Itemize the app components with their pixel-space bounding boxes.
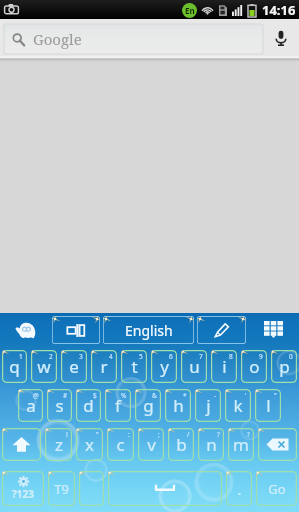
staticText: f — [115, 394, 121, 417]
staticText: q — [9, 355, 20, 378]
staticText: " — [274, 391, 277, 400]
button[interactable]: p — [271, 350, 297, 383]
button[interactable]: w — [31, 350, 57, 383]
staticText: o — [249, 355, 260, 378]
staticText: / — [187, 430, 190, 439]
staticText: $ — [93, 391, 97, 400]
staticText: ? — [217, 430, 220, 439]
button[interactable]: i — [211, 350, 237, 383]
button[interactable]: t — [121, 350, 147, 383]
staticText: T9 — [54, 480, 69, 498]
staticText: 0 — [289, 352, 293, 361]
button[interactable]: Symbols — [2, 471, 44, 506]
button[interactable]: Go — [256, 471, 297, 506]
button[interactable]: j — [195, 389, 221, 422]
staticText: z — [55, 433, 63, 456]
staticText: . — [237, 479, 242, 499]
button[interactable]: Google — [4, 24, 263, 54]
staticText: r — [100, 355, 108, 378]
button[interactable]: d — [76, 389, 101, 422]
staticText: i — [222, 355, 227, 378]
staticText: x — [85, 433, 94, 456]
button[interactable]: Voice search — [263, 19, 299, 56]
staticText: ! — [66, 430, 68, 439]
staticText: ?123 — [12, 487, 34, 501]
staticText: ? — [247, 430, 250, 439]
staticText: 2 — [49, 352, 53, 361]
staticText: g — [143, 394, 154, 417]
staticText: 14:16 — [262, 1, 296, 19]
button[interactable]: Screenshot — [0, 0, 22, 19]
button[interactable]: f — [105, 389, 131, 422]
staticText: Google — [33, 29, 82, 49]
staticText: u — [189, 355, 200, 378]
staticText: l — [266, 394, 271, 417]
button[interactable]: . — [226, 471, 252, 506]
staticText: 7 — [199, 352, 203, 361]
staticText: Go — [268, 480, 286, 498]
staticText: English — [125, 321, 173, 340]
staticText: 4 — [109, 352, 113, 361]
staticText: w — [37, 355, 51, 378]
button[interactable]: n — [198, 428, 224, 461]
button[interactable]: T9 — [48, 471, 75, 506]
button[interactable]: Keyboard layout — [248, 313, 299, 346]
button[interactable]: e — [61, 350, 87, 383]
staticText: 9 — [259, 352, 263, 361]
button[interactable]: GO Keyboard menu — [0, 313, 52, 346]
button[interactable]: a — [18, 389, 43, 422]
button[interactable]: English — [103, 316, 194, 344]
button[interactable]: m — [228, 428, 254, 461]
staticText: n — [206, 433, 217, 456]
button[interactable]: y — [151, 350, 177, 383]
button[interactable]: k — [225, 389, 251, 422]
staticText: c — [116, 433, 125, 456]
button[interactable]: z — [45, 428, 72, 461]
staticText: p — [279, 355, 290, 378]
staticText: @ — [33, 391, 39, 400]
button[interactable]: g — [135, 389, 161, 422]
staticText: " — [96, 430, 99, 439]
staticText: 5 — [139, 352, 143, 361]
button[interactable]: Backspace — [258, 428, 297, 461]
staticText: 8 — [229, 352, 233, 361]
staticText: b — [176, 433, 187, 456]
button[interactable]: b — [168, 428, 194, 461]
staticText: 1 — [19, 352, 23, 361]
button[interactable]: x — [76, 428, 103, 461]
button[interactable]: s — [47, 389, 72, 422]
staticText: e — [69, 355, 79, 378]
button[interactable]: o — [241, 350, 267, 383]
staticText: 6 — [169, 352, 173, 361]
staticText: : — [128, 430, 130, 439]
staticText: En — [185, 5, 195, 16]
staticText: # — [63, 391, 68, 400]
staticText: 3 — [79, 352, 83, 361]
staticText: ' — [245, 391, 247, 400]
staticText: ; — [158, 430, 160, 439]
staticText: & — [152, 391, 157, 400]
button[interactable]: u — [181, 350, 207, 383]
button[interactable]: c — [107, 428, 134, 461]
staticText: - — [214, 391, 217, 400]
button[interactable]: r — [91, 350, 117, 383]
button[interactable]: Split keyboard — [52, 316, 100, 344]
staticText: j — [206, 394, 211, 417]
staticText: m — [233, 433, 249, 456]
button[interactable]: q — [2, 350, 27, 383]
staticText: t — [131, 355, 138, 378]
button[interactable]: l — [255, 389, 281, 422]
staticText: s — [55, 394, 64, 417]
staticText: a — [26, 394, 36, 417]
button[interactable]: Emoji — [79, 471, 104, 506]
button[interactable]: Shift — [2, 428, 41, 461]
button[interactable]: Edit — [197, 316, 246, 344]
button[interactable]: v — [138, 428, 164, 461]
button[interactable]: Space — [108, 471, 222, 506]
staticText: v — [147, 433, 156, 456]
staticText: k — [233, 394, 243, 417]
button[interactable]: h — [165, 389, 191, 422]
staticText: y — [160, 355, 169, 378]
staticText: h — [173, 394, 184, 417]
staticText: d — [83, 394, 94, 417]
